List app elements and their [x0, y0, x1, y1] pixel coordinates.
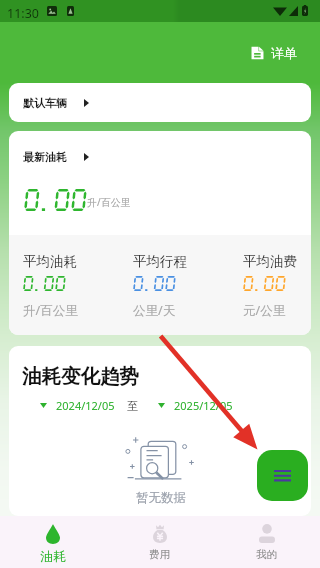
staticText: 默认车辆	[23, 96, 67, 110]
button[interactable]: 油耗	[0, 516, 106, 568]
button[interactable]: 详单	[243, 39, 305, 67]
staticText: 11:30	[7, 5, 39, 22]
button[interactable]: 最新油耗	[23, 150, 89, 164]
staticText: 升/百公里	[23, 302, 78, 319]
staticText: 详单	[271, 45, 297, 61]
button[interactable]: 默认车辆	[9, 83, 311, 122]
button[interactable]: 费用	[106, 516, 213, 568]
staticText: 平均油耗	[23, 253, 77, 270]
staticText: 公里/天	[133, 302, 176, 319]
staticText: 至	[127, 399, 138, 413]
staticText: 我的	[256, 548, 277, 561]
staticText: 2025/12/05	[174, 398, 233, 413]
staticText: 平均行程	[133, 253, 187, 270]
button[interactable]: Menu	[257, 450, 308, 501]
staticText: 升/百公里	[87, 195, 131, 209]
button[interactable]: 我的	[213, 516, 320, 568]
staticText: 油耗变化趋势	[22, 364, 139, 389]
staticText: 最新油耗	[23, 150, 67, 164]
staticText: 暂无数据	[136, 490, 186, 506]
staticText: 费用	[149, 548, 170, 561]
staticText: 平均油费	[243, 253, 297, 270]
staticText: 元/公里	[243, 302, 286, 319]
staticText: 油耗	[40, 548, 66, 564]
staticText: 2024/12/05	[56, 398, 115, 413]
